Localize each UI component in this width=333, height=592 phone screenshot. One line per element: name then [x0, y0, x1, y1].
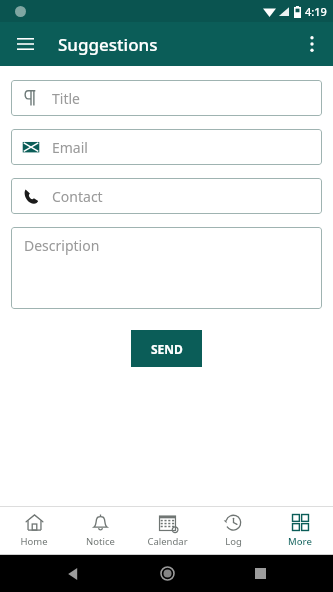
staticText: SEND — [151, 341, 183, 357]
button[interactable]: Notice — [67, 507, 133, 554]
button[interactable]: Recent apps — [240, 555, 280, 592]
staticText: Description — [24, 236, 100, 255]
staticText: Email — [52, 138, 88, 157]
staticText: Calendar — [147, 535, 188, 548]
button[interactable]: Home — [147, 555, 187, 592]
staticText: 4:19 — [305, 4, 327, 19]
staticText: More — [288, 535, 312, 548]
staticText: Home — [20, 535, 48, 548]
staticText: Log — [225, 535, 242, 548]
button[interactable]: Description — [11, 227, 322, 309]
button[interactable]: Home — [1, 507, 67, 554]
button[interactable]: SEND — [131, 330, 202, 367]
button[interactable]: Email — [11, 129, 322, 165]
button[interactable]: Title — [11, 80, 322, 116]
button[interactable]: Back — [53, 555, 93, 592]
button[interactable]: Contact — [11, 178, 322, 214]
staticText: Suggestions — [58, 33, 158, 56]
button[interactable]: Calendar — [134, 507, 200, 554]
staticText: Notice — [86, 535, 115, 548]
button[interactable]: Log — [200, 507, 266, 554]
button[interactable]: More — [267, 507, 333, 554]
button[interactable]: More options — [295, 27, 329, 61]
staticText: Contact — [52, 187, 103, 206]
button[interactable]: Open navigation menu — [8, 27, 42, 61]
staticText: Title — [52, 89, 80, 108]
